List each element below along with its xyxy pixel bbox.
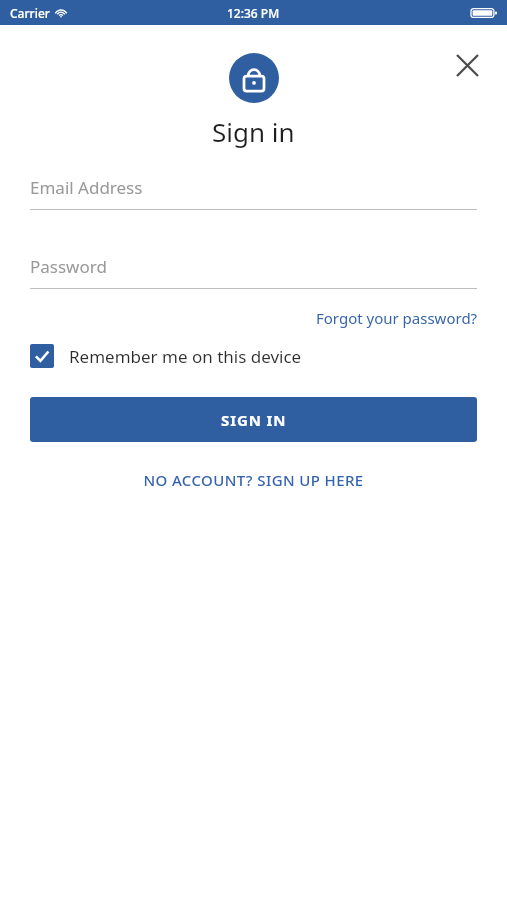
button[interactable]: Forgot your password? — [316, 308, 478, 328]
button[interactable]: Email Address — [30, 176, 477, 210]
staticText: Remember me on this device — [69, 345, 302, 368]
staticText: Sign in — [212, 114, 295, 149]
button[interactable]: Close — [443, 41, 491, 89]
staticText: NO ACCOUNT? SIGN UP HERE — [143, 470, 364, 490]
staticText: Carrier — [10, 5, 50, 21]
button[interactable]: NO ACCOUNT? SIGN UP HERE — [135, 466, 372, 494]
staticText: Password — [30, 255, 107, 278]
staticText: Email Address — [30, 176, 143, 199]
button[interactable]: Password — [30, 255, 477, 289]
staticText: Forgot your password? — [316, 308, 478, 328]
staticText: SIGN IN — [221, 410, 287, 430]
button[interactable]: SIGN IN — [30, 397, 477, 442]
staticText: 12:36 PM — [227, 5, 280, 21]
button[interactable]: Remember me on this device — [30, 342, 302, 370]
